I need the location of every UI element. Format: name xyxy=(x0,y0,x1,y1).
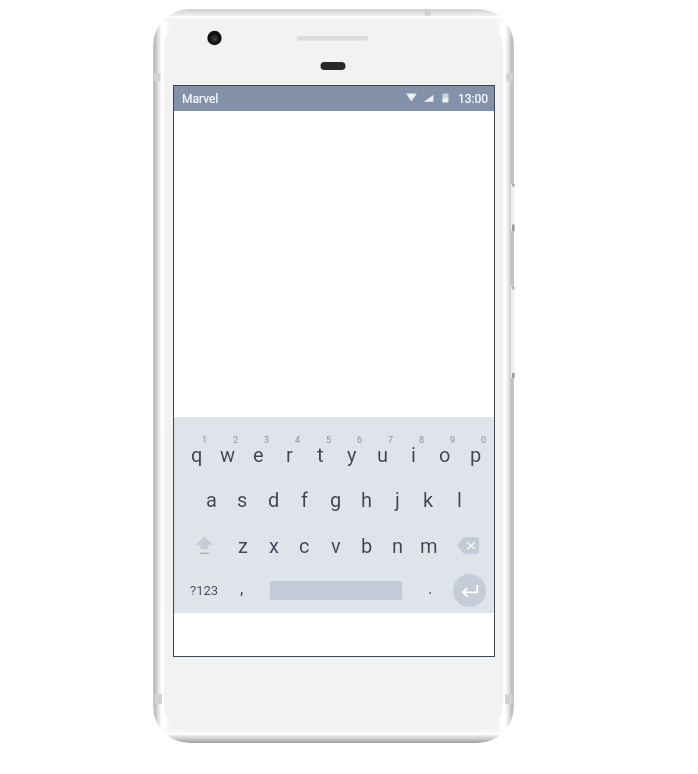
staticText: 7 xyxy=(388,435,394,446)
staticText: , xyxy=(240,578,244,598)
staticText: k xyxy=(423,488,434,511)
staticText: 13:00 xyxy=(458,92,488,106)
button[interactable]: e xyxy=(243,432,274,477)
staticText: w xyxy=(220,443,236,466)
staticText: l xyxy=(457,488,462,511)
button[interactable]: Space xyxy=(255,568,416,613)
staticText: Marvel xyxy=(182,92,219,106)
staticText: ?123 xyxy=(190,583,219,598)
button[interactable]: i xyxy=(398,432,429,477)
button[interactable]: v xyxy=(320,523,351,568)
staticText: m xyxy=(420,534,438,557)
staticText: o xyxy=(439,443,451,466)
staticText: h xyxy=(361,488,373,511)
button[interactable]: w xyxy=(212,432,243,477)
button[interactable]: t xyxy=(305,432,336,477)
staticText: x xyxy=(269,534,279,557)
staticText: . xyxy=(428,578,433,598)
button[interactable]: h xyxy=(351,477,382,522)
staticText: r xyxy=(286,443,293,466)
staticText: d xyxy=(268,488,280,511)
button[interactable]: Enter xyxy=(444,568,490,613)
staticText: q xyxy=(191,443,203,466)
button[interactable]: f xyxy=(289,477,320,522)
button[interactable]: z xyxy=(227,523,258,568)
button[interactable]: p xyxy=(460,432,491,477)
staticText: 6 xyxy=(357,435,363,446)
staticText: 2 xyxy=(233,435,239,446)
staticText: 0 xyxy=(481,435,487,446)
staticText: t xyxy=(317,443,324,466)
staticText: j xyxy=(395,488,400,511)
button[interactable]: b xyxy=(351,523,382,568)
staticText: 4 xyxy=(295,435,301,446)
button[interactable]: ?123 xyxy=(181,568,228,613)
button[interactable]: d xyxy=(258,477,289,522)
button[interactable]: l xyxy=(444,477,475,522)
staticText: 9 xyxy=(450,435,456,446)
button[interactable]: j xyxy=(382,477,413,522)
staticText: u xyxy=(377,443,389,466)
staticText: i xyxy=(411,443,416,466)
staticText: 1 xyxy=(202,435,208,446)
button[interactable]: g xyxy=(320,477,351,522)
button[interactable]: u xyxy=(367,432,398,477)
button[interactable]: , xyxy=(228,568,255,613)
button[interactable]: Backspace xyxy=(444,523,491,568)
staticText: s xyxy=(237,488,248,511)
button[interactable]: m xyxy=(413,523,444,568)
staticText: b xyxy=(361,534,373,557)
button[interactable]: o xyxy=(429,432,460,477)
button[interactable]: . xyxy=(416,568,444,613)
staticText: p xyxy=(470,443,482,466)
staticText: g xyxy=(330,488,342,511)
staticText: n xyxy=(392,534,404,557)
staticText: f xyxy=(301,488,308,511)
staticText: e xyxy=(253,443,264,466)
staticText: v xyxy=(331,534,341,557)
staticText: 3 xyxy=(264,435,270,446)
button[interactable]: s xyxy=(227,477,258,522)
staticText: z xyxy=(238,534,248,557)
staticText: a xyxy=(206,488,217,511)
button[interactable]: c xyxy=(289,523,320,568)
button[interactable]: y xyxy=(336,432,367,477)
staticText: 5 xyxy=(326,435,332,446)
button[interactable]: Shift xyxy=(181,523,227,568)
button[interactable]: k xyxy=(413,477,444,522)
other: Network and battery status xyxy=(406,86,454,111)
button[interactable]: q xyxy=(181,432,212,477)
staticText: y xyxy=(347,443,357,466)
button[interactable]: n xyxy=(382,523,413,568)
button[interactable]: x xyxy=(258,523,289,568)
staticText: 8 xyxy=(419,435,425,446)
button[interactable]: r xyxy=(274,432,305,477)
staticText: c xyxy=(299,534,310,557)
button[interactable]: a xyxy=(196,477,227,522)
